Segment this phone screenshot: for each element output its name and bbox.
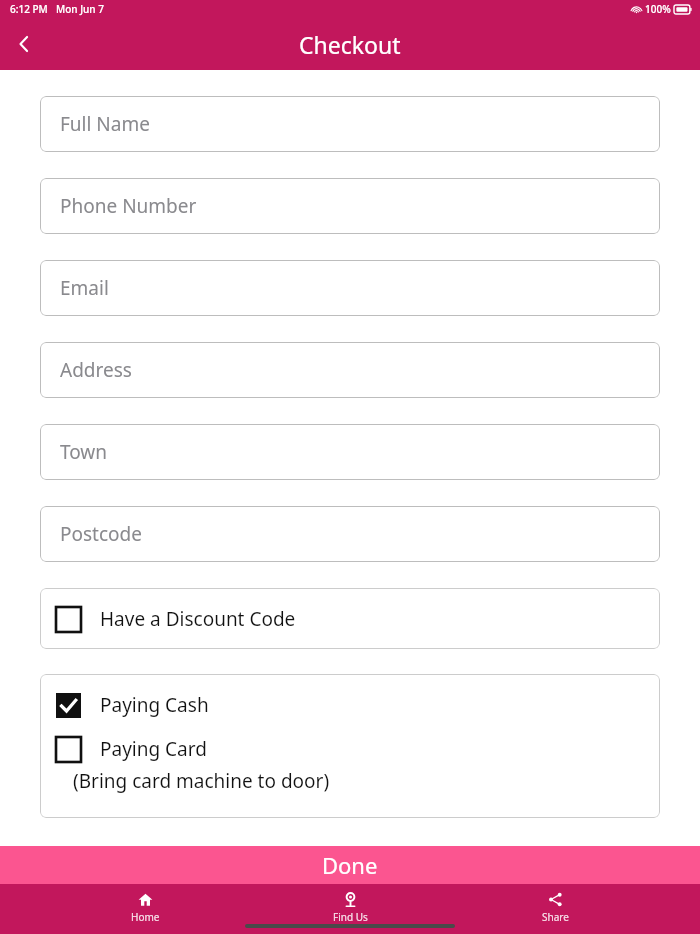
button[interactable]: Share (495, 890, 615, 926)
staticText: Full Name (60, 111, 150, 137)
staticText: 100% (645, 2, 671, 16)
staticText: 6:12 PM (10, 2, 48, 16)
staticText: Paying Cash (100, 692, 209, 718)
staticText: Home (131, 910, 160, 924)
staticText: Checkout (299, 29, 401, 60)
staticText: Paying Card (100, 736, 207, 762)
staticText: Postcode (60, 521, 142, 547)
button[interactable]: Paying Card (40, 736, 660, 794)
button[interactable]: Postcode (40, 506, 660, 562)
button[interactable]: Phone Number (40, 178, 660, 234)
staticText: Find Us (333, 910, 368, 924)
staticText: Address (60, 357, 132, 383)
staticText: Mon Jun 7 (56, 2, 104, 16)
staticText: Email (60, 275, 109, 301)
staticText: Town (60, 439, 108, 465)
staticText: Phone Number (60, 193, 197, 219)
button[interactable]: Back (0, 20, 48, 68)
button[interactable]: Done (0, 846, 700, 884)
button[interactable]: Address (40, 342, 660, 398)
staticText: Have a Discount Code (100, 606, 296, 632)
staticText: Share (542, 910, 569, 924)
button[interactable]: Home (85, 890, 205, 926)
button[interactable]: Email (40, 260, 660, 316)
button[interactable]: Find Us (290, 890, 410, 926)
staticText: Done (322, 850, 378, 880)
button[interactable]: Town (40, 424, 660, 480)
button[interactable]: Paying Cash (40, 674, 660, 736)
button[interactable]: Full Name (40, 96, 660, 152)
staticText: (Bring card machine to door) (73, 768, 330, 794)
button[interactable]: Have a Discount Code (40, 588, 660, 649)
